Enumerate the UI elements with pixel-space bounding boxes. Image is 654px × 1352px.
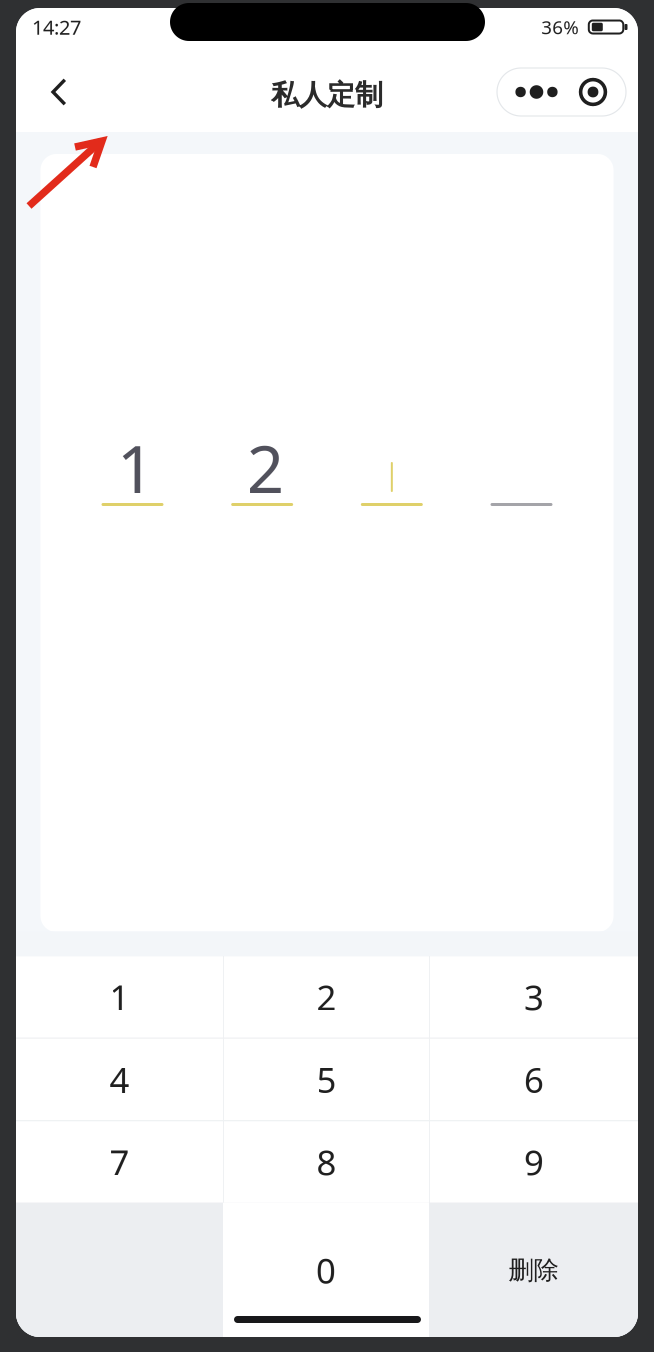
button[interactable]: 2	[224, 956, 429, 1038]
staticText: 4	[109, 1056, 129, 1102]
staticText: 36%	[541, 15, 579, 39]
staticText: 1	[109, 974, 129, 1020]
button[interactable]: 7	[16, 1121, 223, 1203]
button[interactable]: Back	[32, 62, 86, 122]
button[interactable]: 4	[16, 1039, 223, 1120]
button[interactable]: 1	[16, 956, 223, 1038]
staticText: 8	[316, 1139, 336, 1185]
staticText: 2	[316, 974, 336, 1020]
button[interactable]: More options	[497, 68, 626, 116]
staticText: 5	[316, 1056, 336, 1102]
button[interactable]	[16, 1203, 223, 1338]
button[interactable]: 6	[430, 1039, 638, 1120]
staticText: 1	[117, 425, 154, 511]
staticText: 删除	[508, 1255, 558, 1286]
staticText: 0	[316, 1247, 336, 1293]
button[interactable]: 9	[430, 1121, 638, 1203]
button[interactable]: 8	[224, 1121, 429, 1203]
staticText: 私人定制	[271, 78, 383, 112]
staticText: 7	[109, 1139, 129, 1185]
button[interactable]: 3	[430, 956, 638, 1038]
button[interactable]: 0	[223, 1203, 429, 1338]
staticText: 6	[524, 1056, 544, 1102]
button[interactable]: 删除	[429, 1203, 638, 1338]
staticText: 14:27	[32, 14, 81, 40]
staticText: 2	[247, 425, 284, 511]
button[interactable]: 5	[224, 1039, 429, 1120]
staticText: 9	[524, 1139, 544, 1185]
staticText: 3	[524, 974, 544, 1020]
